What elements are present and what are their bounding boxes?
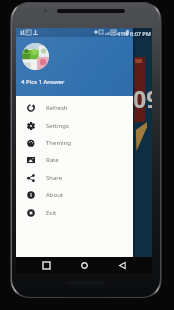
button[interactable]: Back xyxy=(114,257,130,273)
button[interactable]: Exit xyxy=(16,204,133,221)
button[interactable]: Home xyxy=(76,257,92,273)
button[interactable]: Rate xyxy=(16,151,133,168)
staticText: Refresh xyxy=(46,104,68,112)
button[interactable]: Theming xyxy=(16,134,133,151)
staticText: Exit xyxy=(46,209,57,217)
staticText: 4 Pics 1 Answer xyxy=(21,78,65,86)
button[interactable]: Refresh xyxy=(16,99,133,116)
staticText: 09 xyxy=(133,83,152,114)
button[interactable]: About xyxy=(16,186,133,203)
button[interactable]: Share xyxy=(16,169,133,186)
staticText: Theming xyxy=(46,139,71,147)
staticText: 41% xyxy=(117,30,128,37)
staticText: Rate xyxy=(46,156,59,164)
button[interactable]: Settings xyxy=(16,117,133,134)
button[interactable]: Recent apps xyxy=(38,257,54,273)
staticText: Settings xyxy=(46,122,69,130)
staticText: Share xyxy=(46,174,63,182)
staticText: 6:07 PM xyxy=(130,30,151,37)
staticText: About xyxy=(46,191,64,199)
